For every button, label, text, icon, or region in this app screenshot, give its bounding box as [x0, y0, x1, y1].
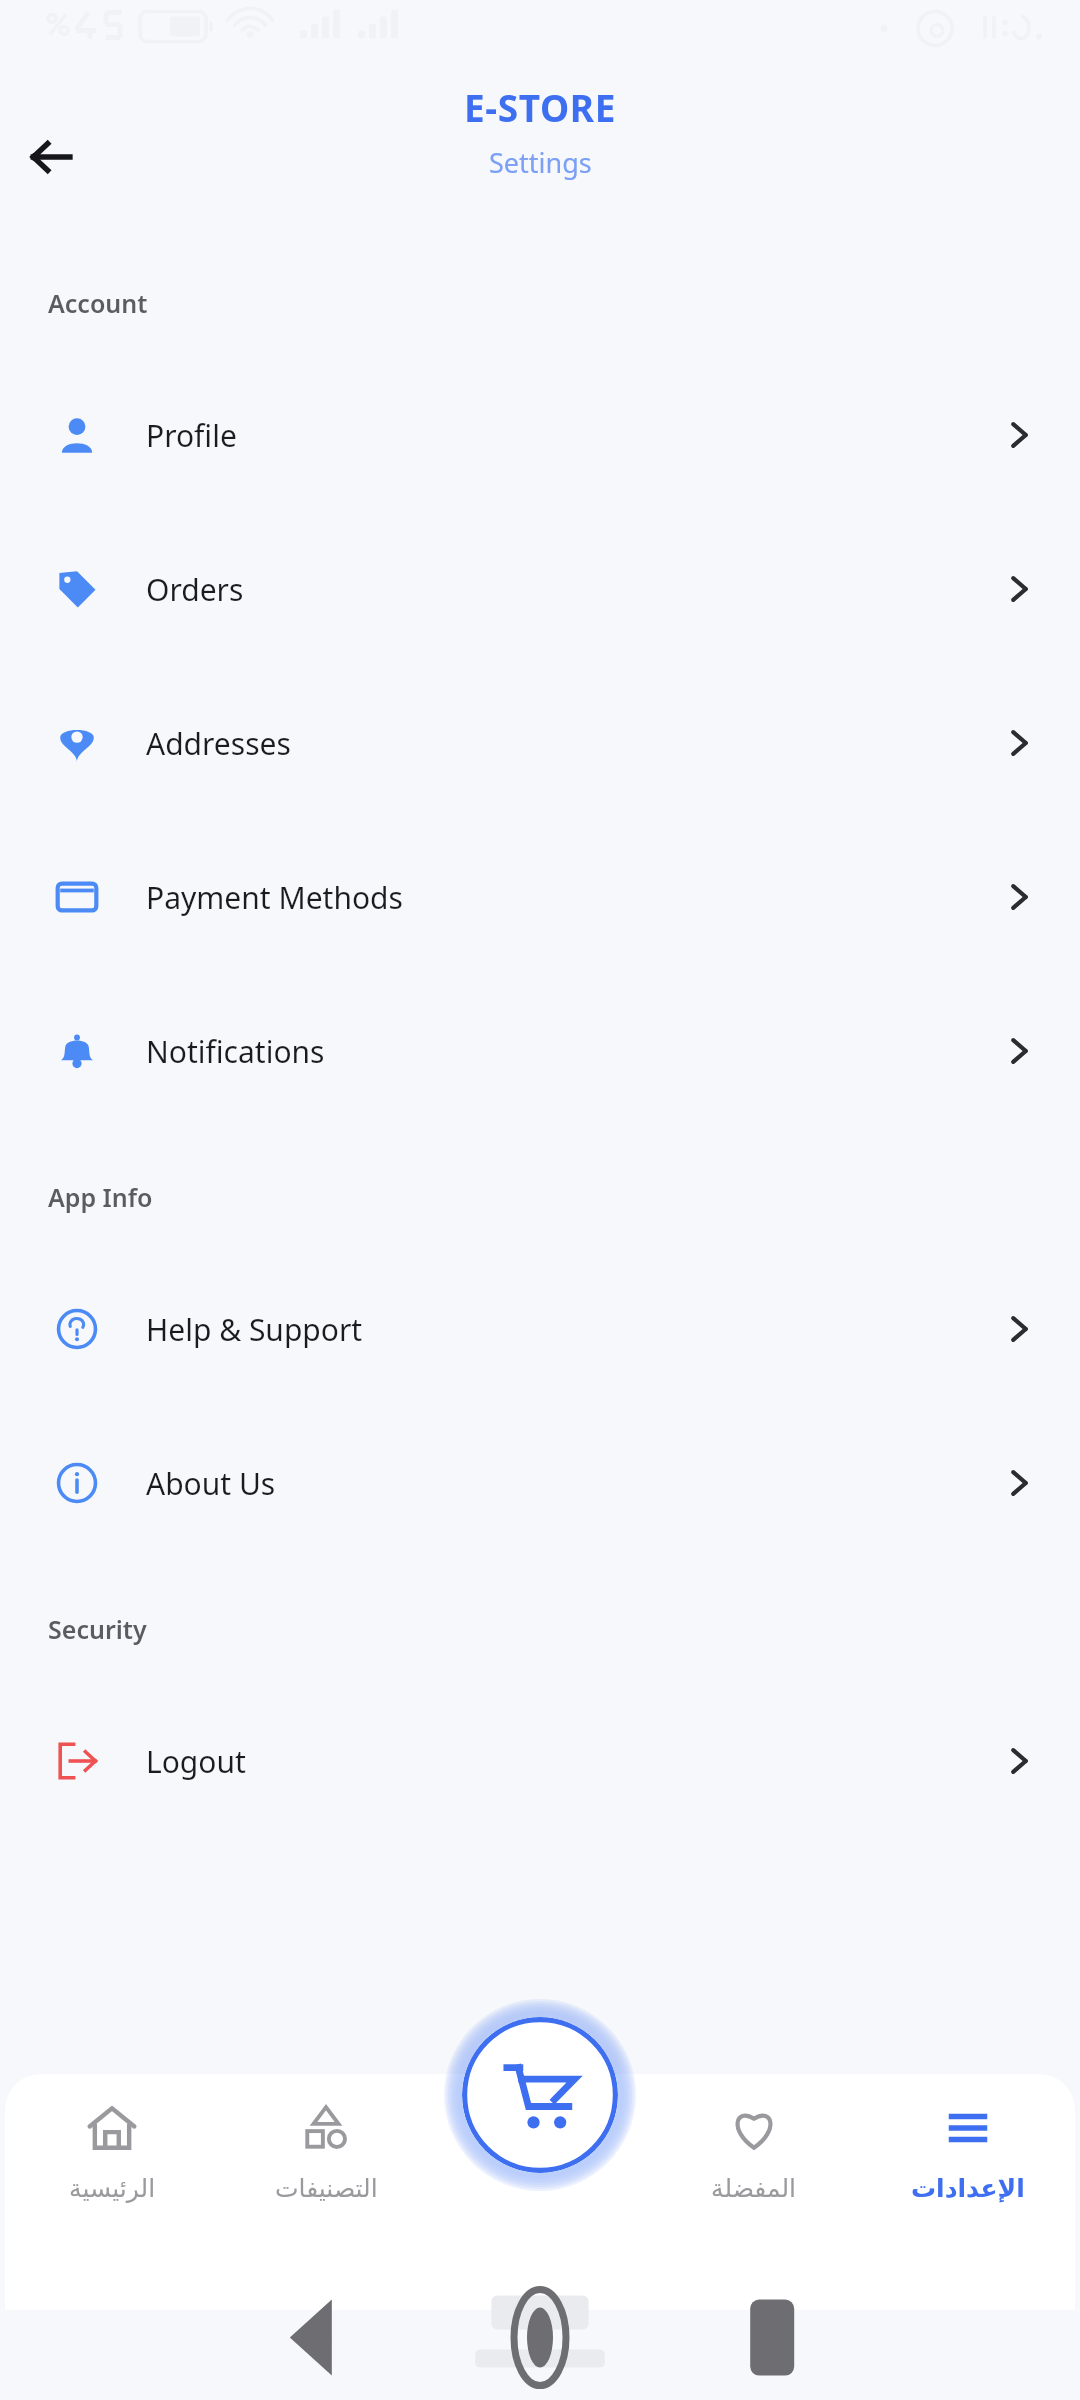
button[interactable]: Back — [22, 128, 80, 186]
button[interactable]: Cart — [462, 2017, 618, 2173]
button[interactable]: الرئيسية — [5, 2102, 219, 2203]
staticText: Settings — [489, 144, 592, 181]
button[interactable]: Payment Methods — [0, 820, 1080, 974]
staticText: Account — [48, 286, 148, 320]
button[interactable]: Addresses — [0, 666, 1080, 820]
staticText: E-STORE — [464, 82, 617, 132]
staticText: Help & Support — [146, 1309, 363, 1350]
staticText: About Us — [146, 1463, 276, 1504]
staticText: Payment Methods — [146, 877, 403, 918]
button[interactable]: المفضلة — [647, 2102, 861, 2203]
button[interactable]: Orders — [0, 512, 1080, 666]
staticText: Logout — [146, 1741, 246, 1782]
staticText: Addresses — [146, 723, 291, 764]
button[interactable]: Notifications — [0, 974, 1080, 1128]
button[interactable]: Help & Support — [0, 1252, 1080, 1406]
staticText: التصنيفات — [275, 2174, 378, 2203]
staticText: Security — [48, 1612, 147, 1646]
staticText: المفضلة — [711, 2174, 797, 2203]
staticText: الإعدادات — [911, 2174, 1025, 2203]
staticText: Orders — [146, 569, 244, 610]
button[interactable]: الإعدادات — [861, 2102, 1075, 2203]
button[interactable]: Profile — [0, 358, 1080, 512]
button[interactable]: About Us — [0, 1406, 1080, 1560]
staticText: Notifications — [146, 1031, 325, 1072]
staticText: Profile — [146, 415, 237, 456]
button[interactable]: التصنيفات — [219, 2102, 433, 2203]
staticText: الرئيسية — [69, 2174, 156, 2203]
button[interactable]: Logout — [0, 1684, 1080, 1838]
staticText: App Info — [48, 1180, 153, 1214]
